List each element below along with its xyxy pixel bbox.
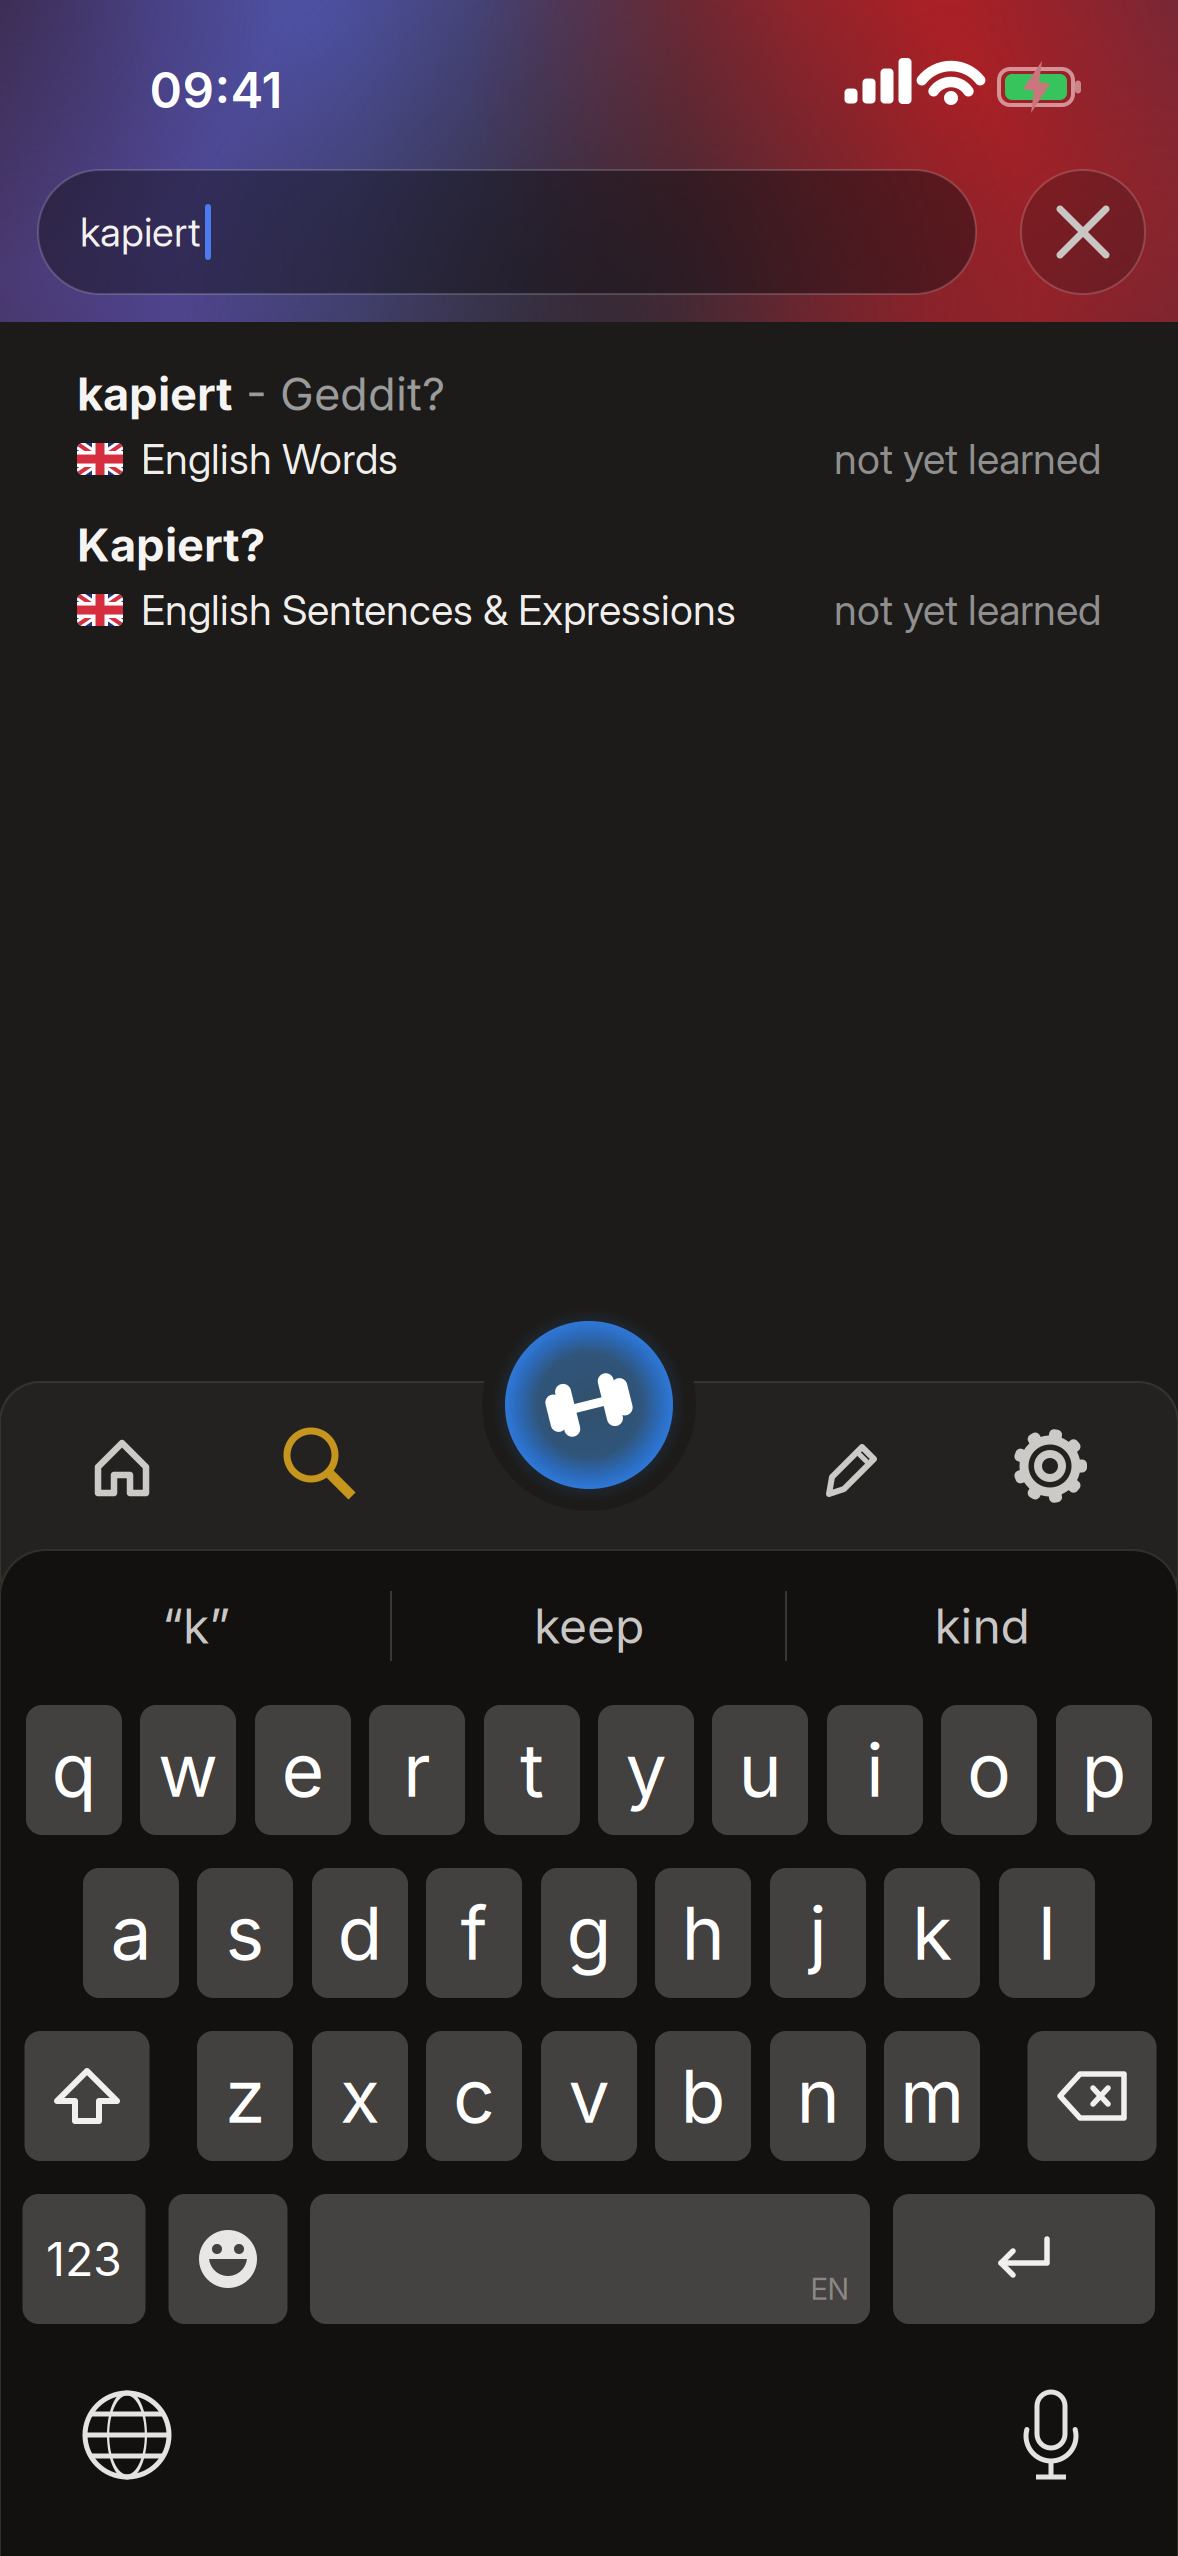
button[interactable]: y: [598, 1705, 694, 1835]
staticText: “k”: [162, 1598, 230, 1654]
button[interactable]: p: [1056, 1705, 1152, 1835]
button[interactable]: [24, 2031, 149, 2161]
button[interactable]: [72, 1418, 172, 1518]
staticText: a: [110, 1890, 151, 1976]
button[interactable]: o: [941, 1705, 1037, 1835]
button[interactable]: c: [426, 2031, 522, 2161]
staticText: b: [680, 2053, 725, 2139]
button[interactable]: [996, 2382, 1106, 2492]
button[interactable]: keep: [399, 1586, 779, 1666]
staticText: s: [225, 1890, 264, 1976]
button[interactable]: q: [26, 1705, 122, 1835]
button[interactable]: [269, 1413, 369, 1513]
button[interactable]: kind: [792, 1586, 1172, 1666]
button[interactable]: m: [884, 2031, 980, 2161]
staticText: English Sentences & Expressions: [141, 586, 736, 634]
button[interactable]: kapiert: [38, 170, 976, 294]
staticText: r: [403, 1727, 431, 1813]
staticText: kapiert: [77, 367, 233, 421]
button[interactable]: z: [197, 2031, 293, 2161]
staticText: z: [225, 2053, 265, 2139]
staticText: u: [738, 1727, 781, 1813]
staticText: n: [796, 2053, 839, 2139]
staticText: 09:41: [149, 61, 282, 119]
button[interactable]: a: [83, 1868, 179, 1998]
staticText: f: [460, 1890, 487, 1976]
button[interactable]: v: [541, 2031, 637, 2161]
button[interactable]: r: [369, 1705, 465, 1835]
button[interactable]: l: [999, 1868, 1095, 1998]
staticText: English Words: [141, 435, 398, 483]
button[interactable]: Kapiert?: [77, 516, 1101, 636]
staticText: not yet learned: [834, 586, 1101, 634]
button[interactable]: d: [312, 1868, 408, 1998]
staticText: p: [1081, 1727, 1126, 1813]
button[interactable]: [1021, 170, 1145, 294]
button[interactable]: f: [426, 1868, 522, 1998]
staticText: w: [158, 1727, 218, 1813]
button[interactable]: [1000, 1416, 1100, 1516]
button[interactable]: n: [770, 2031, 866, 2161]
staticText: not yet learned: [834, 435, 1101, 483]
staticText: kind: [934, 1598, 1029, 1654]
button[interactable]: [72, 2380, 182, 2490]
button[interactable]: [1027, 2031, 1156, 2161]
staticText: kapiert: [80, 208, 201, 256]
button[interactable]: h: [655, 1868, 751, 1998]
button[interactable]: w: [140, 1705, 236, 1835]
staticText: EN: [810, 2272, 849, 2306]
button[interactable]: [168, 2194, 287, 2324]
button[interactable]: t: [484, 1705, 580, 1835]
staticText: l: [1038, 1890, 1056, 1976]
staticText: t: [520, 1727, 544, 1813]
button[interactable]: [806, 1417, 906, 1517]
button[interactable]: e: [255, 1705, 351, 1835]
staticText: y: [625, 1727, 666, 1813]
button[interactable]: i: [827, 1705, 923, 1835]
button[interactable]: s: [197, 1868, 293, 1998]
staticText: m: [900, 2053, 964, 2139]
staticText: d: [337, 1890, 382, 1976]
button[interactable]: k: [884, 1868, 980, 1998]
button[interactable]: EN: [310, 2194, 870, 2324]
staticText: v: [568, 2053, 609, 2139]
staticText: j: [809, 1890, 827, 1976]
button[interactable]: [893, 2194, 1155, 2324]
staticText: k: [912, 1890, 952, 1976]
staticText: c: [453, 2053, 495, 2139]
staticText: keep: [534, 1598, 644, 1654]
button[interactable]: x: [312, 2031, 408, 2161]
staticText: i: [866, 1727, 884, 1813]
staticText: 123: [46, 2231, 122, 2287]
button[interactable]: [505, 1321, 673, 1489]
staticText: - Geddit?: [233, 367, 445, 421]
staticText: o: [967, 1727, 1011, 1813]
staticText: h: [681, 1890, 724, 1976]
staticText: Kapiert?: [77, 518, 265, 572]
staticText: q: [51, 1727, 96, 1813]
staticText: e: [281, 1727, 324, 1813]
staticText: x: [340, 2053, 380, 2139]
button[interactable]: kapiert: [77, 365, 1101, 485]
button[interactable]: 123: [22, 2194, 145, 2324]
button[interactable]: b: [655, 2031, 751, 2161]
button[interactable]: “k”: [6, 1586, 386, 1666]
button[interactable]: g: [541, 1868, 637, 1998]
staticText: g: [566, 1890, 611, 1976]
button[interactable]: j: [770, 1868, 866, 1998]
button[interactable]: u: [712, 1705, 808, 1835]
